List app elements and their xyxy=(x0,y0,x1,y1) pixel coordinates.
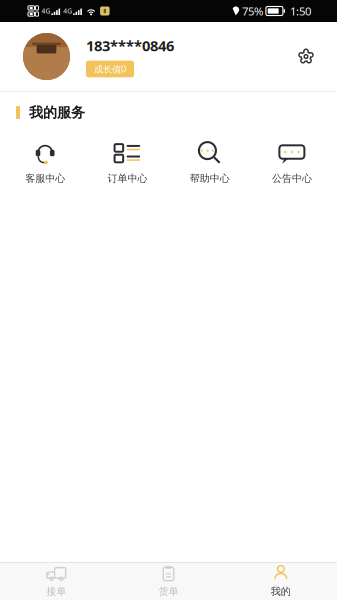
button[interactable]: 客服中心 xyxy=(4,139,86,187)
staticText: 4G xyxy=(63,6,72,16)
button[interactable]: 帮助中心 xyxy=(168,139,251,187)
staticText: 客服中心 xyxy=(25,172,65,185)
staticText: 订单中心 xyxy=(107,172,147,185)
staticText: 货单 xyxy=(158,585,178,598)
staticText: 我的服务 xyxy=(29,104,85,121)
staticText: 公告中心 xyxy=(272,172,312,185)
staticText: 成长值0 xyxy=(94,63,126,75)
staticText: 接单 xyxy=(46,585,66,598)
button[interactable]: 公告中心 xyxy=(251,139,333,187)
staticText: 1:50 xyxy=(290,3,311,19)
button[interactable]: 我的 xyxy=(225,563,337,600)
staticText: 75% xyxy=(242,3,263,19)
staticText: 4G xyxy=(41,6,50,16)
staticText: 帮助中心 xyxy=(190,172,230,185)
button[interactable]: 接单 xyxy=(0,563,112,600)
button[interactable]: 订单中心 xyxy=(86,139,168,187)
button[interactable]: Settings xyxy=(283,28,329,84)
button[interactable]: 货单 xyxy=(112,563,225,600)
staticText: 183****0846 xyxy=(86,36,174,56)
staticText: 我的 xyxy=(271,585,291,598)
